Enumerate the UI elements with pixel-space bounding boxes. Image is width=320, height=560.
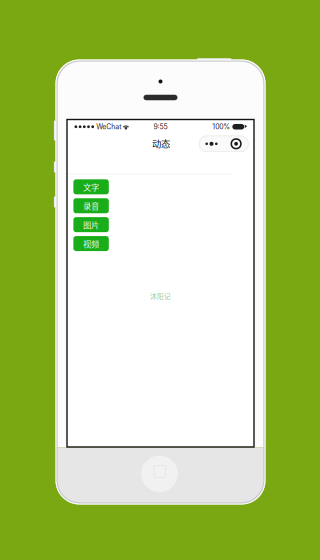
button[interactable]: 图片 <box>73 217 109 232</box>
staticText: 100% <box>212 123 230 131</box>
button[interactable]: 视频 <box>73 236 109 251</box>
staticText: 动态 <box>152 136 170 150</box>
button[interactable]: 文字 <box>73 179 109 194</box>
staticText: 图片 <box>83 219 99 231</box>
staticText: 文字 <box>83 181 99 193</box>
staticText: 录音 <box>83 200 99 212</box>
staticText: 沐阳记 <box>150 291 171 301</box>
button[interactable]: 录音 <box>73 198 109 213</box>
staticText: 9:55 <box>153 123 167 131</box>
button[interactable]: More options <box>199 136 248 152</box>
staticText: WeChat <box>96 123 121 131</box>
staticText: 视频 <box>83 238 99 250</box>
